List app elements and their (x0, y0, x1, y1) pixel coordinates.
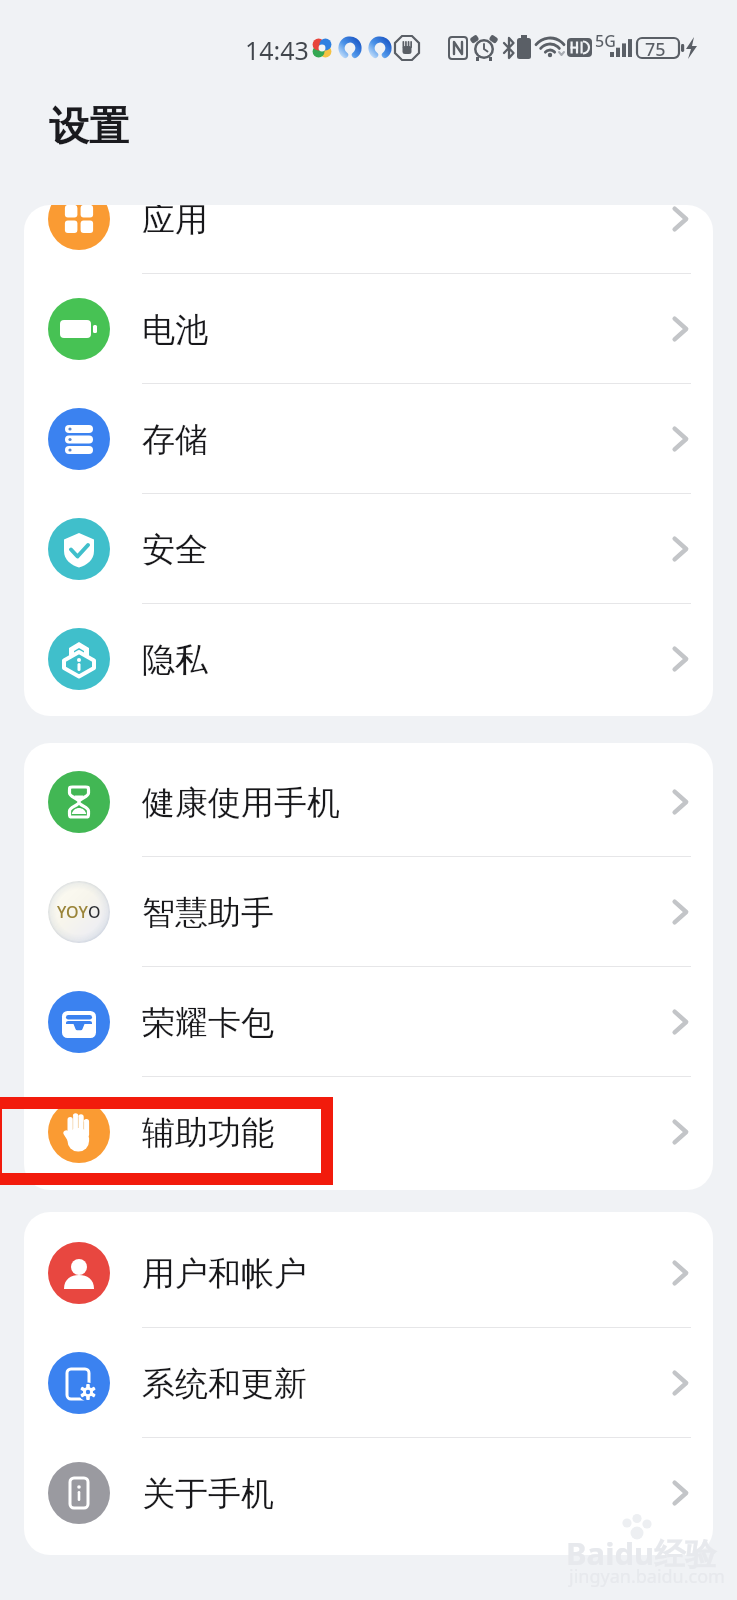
staticText: 关于手机 (142, 1473, 274, 1515)
staticText: 安全 (142, 529, 208, 571)
staticText: 5G (595, 30, 616, 52)
staticText: jingyan.baidu.com (569, 1564, 725, 1589)
staticText: 应用 (142, 205, 208, 241)
button[interactable]: 隐私 (24, 604, 713, 714)
button[interactable]: 荣耀卡包 (24, 967, 713, 1077)
staticText: 系统和更新 (142, 1363, 307, 1405)
staticText: 14:43 (245, 33, 309, 67)
button[interactable]: 存储 (24, 384, 713, 494)
staticText: YOY (57, 901, 88, 923)
button[interactable]: YOY (24, 857, 713, 967)
staticText: 荣耀卡包 (142, 1002, 274, 1044)
button[interactable]: 健康使用手机 (24, 747, 713, 857)
staticText: 用户和帐户 (142, 1253, 307, 1295)
staticText: 健康使用手机 (142, 782, 340, 824)
button[interactable]: 应用 (24, 205, 713, 274)
staticText: 辅助功能 (142, 1112, 274, 1154)
button[interactable]: 辅助功能 (24, 1077, 713, 1187)
staticText: O (88, 901, 101, 923)
button[interactable]: 安全 (24, 494, 713, 604)
staticText: 存储 (142, 419, 208, 461)
button[interactable]: 关于手机 (24, 1438, 713, 1548)
button[interactable]: 系统和更新 (24, 1328, 713, 1438)
staticText: 75 (645, 37, 666, 62)
staticText: 设置 (49, 101, 129, 151)
button[interactable]: 用户和帐户 (24, 1218, 713, 1328)
staticText: Baidu经验 (566, 1532, 717, 1574)
button[interactable]: 电池 (24, 274, 713, 384)
staticText: 隐私 (142, 639, 208, 681)
staticText: 电池 (142, 309, 208, 351)
staticText: 智慧助手 (142, 892, 274, 934)
